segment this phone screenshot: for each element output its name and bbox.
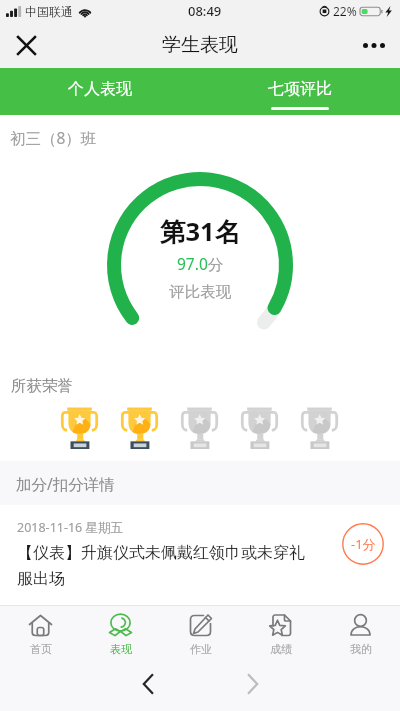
button[interactable]: 我的 [320, 606, 400, 658]
button[interactable]: 2018-11-16 星期五 [0, 505, 400, 589]
staticText: 学生表现 [162, 33, 238, 57]
button[interactable]: More options [356, 27, 392, 63]
button[interactable]: 表现 [80, 606, 160, 658]
staticText: 2018-11-16 星期五 [17, 519, 124, 536]
staticText: 表现 [110, 642, 132, 656]
button[interactable]: Close [8, 27, 44, 63]
button[interactable]: 作业 [160, 606, 240, 658]
staticText: 【仪表】升旗仪式未佩戴红领巾或未穿礼服出场 [17, 543, 309, 589]
staticText: 作业 [190, 642, 212, 656]
staticText: 评比表现 [169, 282, 231, 302]
button[interactable]: 成绩 [240, 606, 320, 658]
staticText: 成绩 [270, 642, 292, 656]
staticText: 个人表现 [68, 79, 132, 99]
staticText: 初三（8）班 [10, 127, 97, 148]
staticText: 首页 [30, 642, 52, 656]
staticText: 22% [333, 3, 357, 19]
staticText: 我的 [350, 642, 372, 656]
button[interactable]: 七项评比 [200, 68, 400, 115]
staticText: 七项评比 [268, 79, 332, 99]
staticText: 08:49 [188, 2, 222, 20]
button[interactable]: Back [128, 664, 168, 704]
button[interactable]: 首页 [0, 606, 80, 658]
staticText: 中国联通 [25, 4, 73, 19]
button[interactable]: 个人表现 [0, 68, 200, 115]
staticText: 第31名 [160, 214, 241, 249]
button[interactable]: Forward [233, 664, 273, 704]
staticText: -1分 [351, 535, 376, 553]
staticText: 97.0分 [177, 253, 224, 274]
staticText: 加分/扣分详情 [16, 473, 115, 494]
staticText: 所获荣誉 [11, 376, 73, 396]
